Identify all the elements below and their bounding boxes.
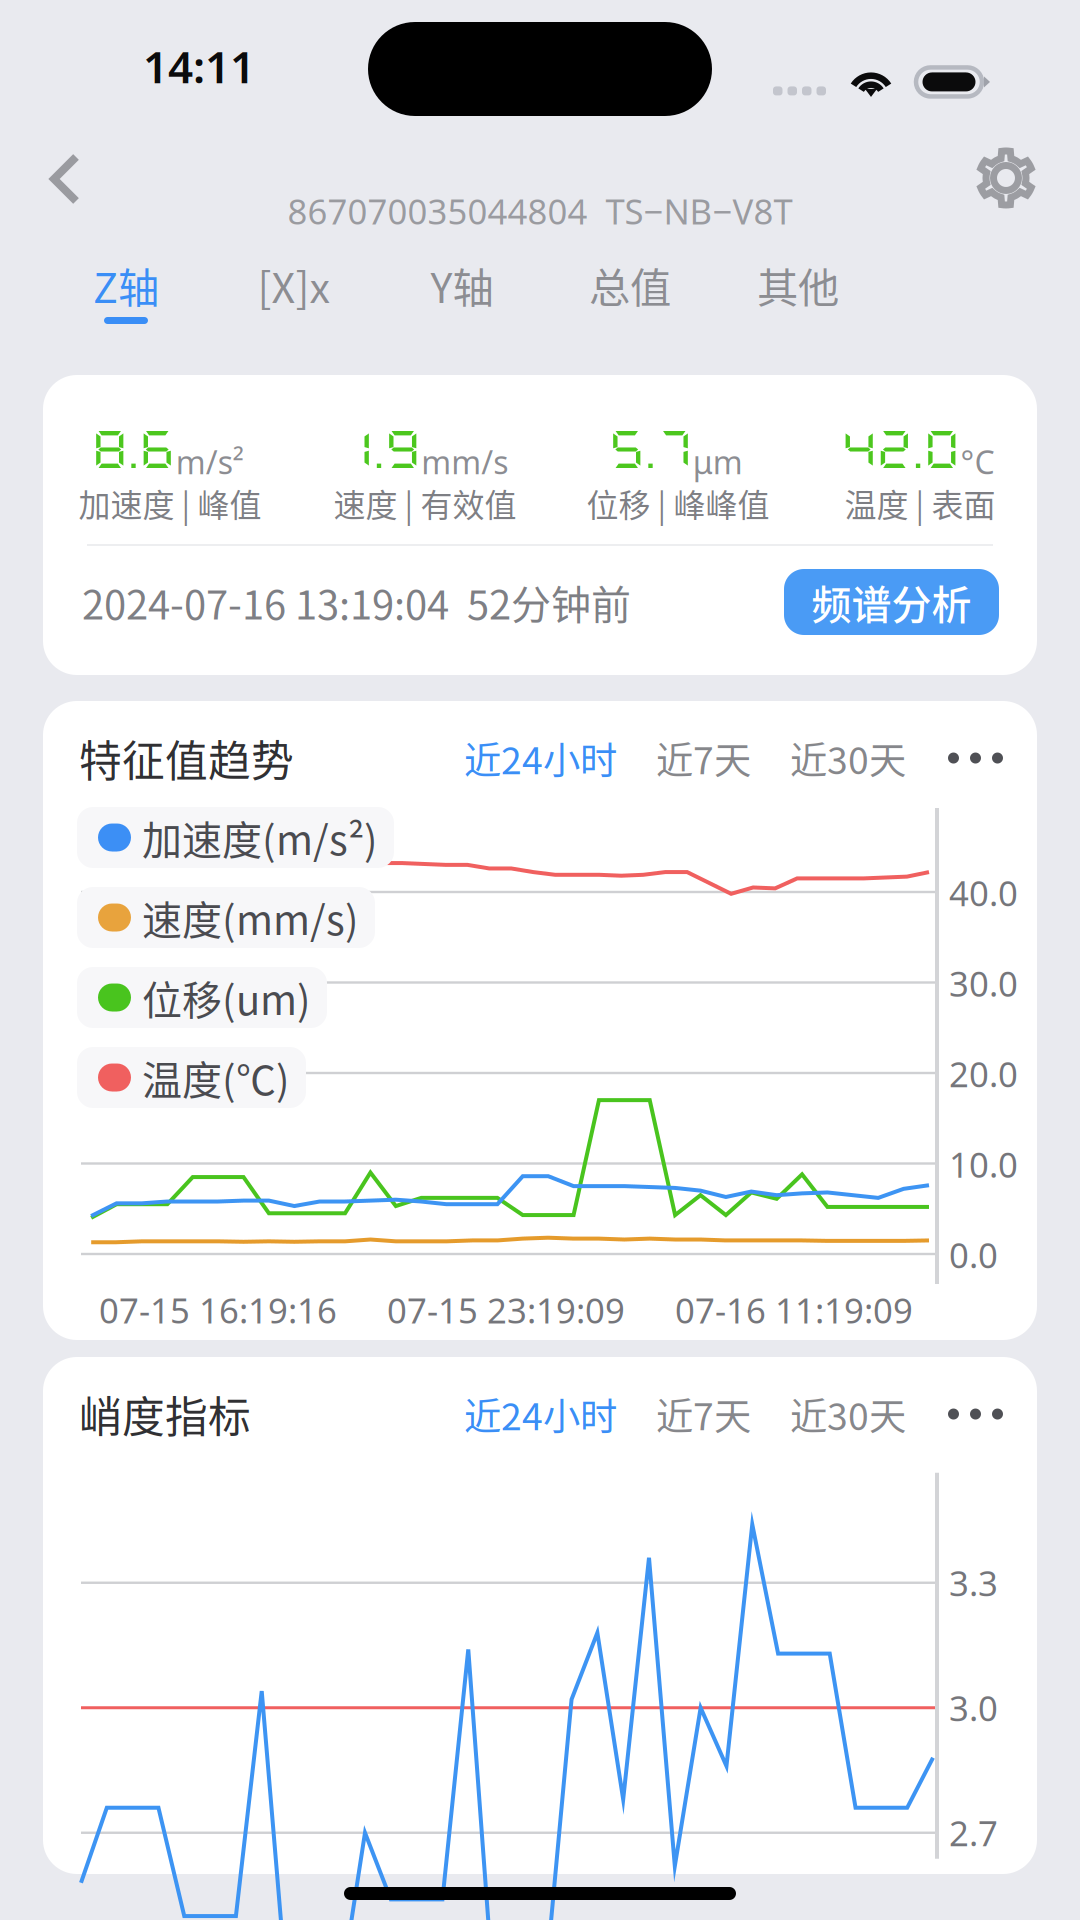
staticText: 30.0 (949, 960, 1018, 1006)
button[interactable]: 近30天 (751, 721, 906, 795)
button[interactable]: Settings (947, 126, 1080, 224)
staticText: m/s² (176, 440, 244, 483)
staticText: 近24小时 (464, 1387, 617, 1441)
staticText: 2.7 (949, 1810, 998, 1856)
staticText: 温度 | 表面 (844, 480, 995, 526)
staticText: 2024-07-16 13:19:04 52分钟前 (82, 573, 631, 631)
button[interactable]: 近7天 (617, 721, 751, 795)
staticText: 867070035044804 TS−NB−V8T (287, 188, 792, 234)
staticText: 3.3 (949, 1560, 998, 1606)
staticText: 10.0 (949, 1141, 1018, 1187)
staticText: 其他 (757, 255, 839, 315)
staticText: 14:11 (143, 37, 255, 95)
button[interactable]: 近30天 (751, 1377, 906, 1451)
staticText: 0.0 (949, 1232, 998, 1278)
staticText: 近24小时 (464, 731, 617, 785)
staticText: 速度(mm/s) (142, 888, 359, 946)
button[interactable]: 近7天 (617, 1377, 751, 1451)
staticText: 近30天 (790, 1387, 906, 1441)
staticText: 近7天 (656, 1387, 751, 1441)
button[interactable]: [X]x (210, 259, 378, 324)
button[interactable]: 其他 (714, 259, 882, 324)
staticText: μm (693, 440, 743, 483)
staticText: Z轴 (93, 255, 159, 315)
staticText: 位移 | 峰峰值 (586, 480, 769, 526)
button[interactable]: Back (0, 126, 117, 224)
staticText: Y轴 (430, 255, 493, 315)
button[interactable]: 总值 (546, 259, 714, 324)
button[interactable]: More options (906, 1386, 1007, 1441)
button[interactable]: 近24小时 (464, 721, 617, 795)
button[interactable]: Z轴 (42, 259, 210, 324)
staticText: 3.0 (949, 1685, 998, 1731)
staticText: 速度 | 有效值 (333, 480, 516, 526)
button[interactable]: 近24小时 (464, 1377, 617, 1451)
staticText: 近30天 (790, 731, 906, 785)
button[interactable]: More options (906, 730, 1007, 785)
staticText: 07-15 23:19:09 (387, 1287, 625, 1333)
staticText: 07-15 16:19:16 (99, 1287, 337, 1333)
staticText: 总值 (589, 255, 671, 315)
staticText: 峭度指标 (79, 1383, 251, 1445)
staticText: mm/s (421, 440, 508, 483)
staticText: 40.0 (949, 870, 1018, 916)
staticText: 位移(um) (142, 968, 311, 1026)
staticText: 加速度(m/s²) (142, 808, 378, 866)
staticText: 频谱分析 (811, 573, 971, 631)
button[interactable]: Y轴 (378, 259, 546, 324)
staticText: 20.0 (949, 1051, 1018, 1097)
staticText: 07-16 11:19:09 (675, 1287, 913, 1333)
staticText: 加速度 | 峰值 (78, 480, 261, 526)
staticText: 温度(℃) (142, 1048, 290, 1106)
staticText: 近7天 (656, 731, 751, 785)
staticText: [X]x (257, 255, 330, 315)
staticText: 特征值趋势 (79, 727, 294, 789)
staticText: °C (960, 440, 994, 483)
button[interactable]: 频谱分析 (784, 569, 999, 635)
